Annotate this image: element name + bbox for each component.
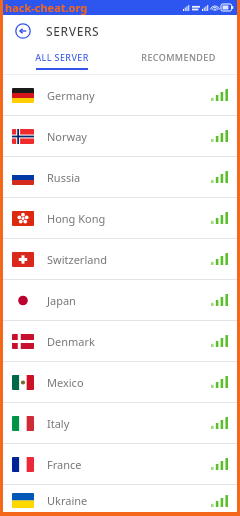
- button[interactable]: Hong Kong: [3, 198, 237, 239]
- button[interactable]: Back: [14, 22, 32, 40]
- staticText: Russia: [47, 170, 81, 185]
- staticText: Germany: [47, 88, 95, 103]
- staticText: Italy: [47, 416, 70, 431]
- button[interactable]: Ukraine: [3, 485, 237, 516]
- staticText: Denmark: [47, 334, 95, 349]
- button[interactable]: Russia: [3, 157, 237, 198]
- button[interactable]: Japan: [3, 280, 237, 321]
- staticText: Mexico: [47, 375, 84, 390]
- staticText: ALL SERVER: [35, 51, 89, 63]
- staticText: hack-cheat.org: [5, 0, 88, 15]
- staticText: Switzerland: [47, 252, 107, 267]
- staticText: Norway: [47, 129, 87, 144]
- button[interactable]: Italy: [3, 403, 237, 444]
- staticText: Japan: [47, 293, 76, 308]
- button[interactable]: Germany: [3, 75, 237, 116]
- staticText: Hong Kong: [47, 211, 106, 226]
- staticText: France: [47, 457, 82, 472]
- staticText: SERVERS: [46, 23, 100, 39]
- button[interactable]: ALL SERVER: [3, 46, 120, 74]
- staticText: Ukraine: [47, 493, 88, 508]
- button[interactable]: RECOMMENDED: [120, 46, 237, 74]
- button[interactable]: France: [3, 444, 237, 485]
- button[interactable]: Switzerland: [3, 239, 237, 280]
- button[interactable]: Norway: [3, 116, 237, 157]
- button[interactable]: Denmark: [3, 321, 237, 362]
- staticText: RECOMMENDED: [141, 51, 216, 63]
- button[interactable]: Mexico: [3, 362, 237, 403]
